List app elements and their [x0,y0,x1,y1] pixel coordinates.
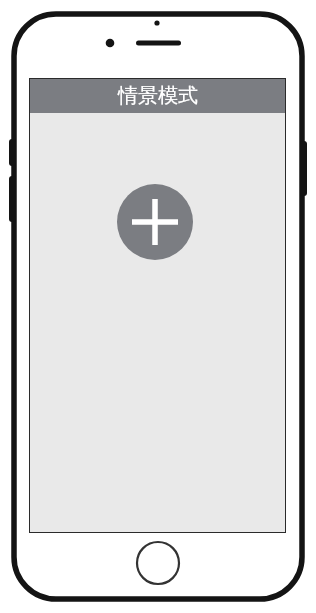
button[interactable]: Add scene [117,184,193,260]
staticText: 情景模式 [118,83,198,108]
button[interactable]: 情景模式 [29,78,286,113]
